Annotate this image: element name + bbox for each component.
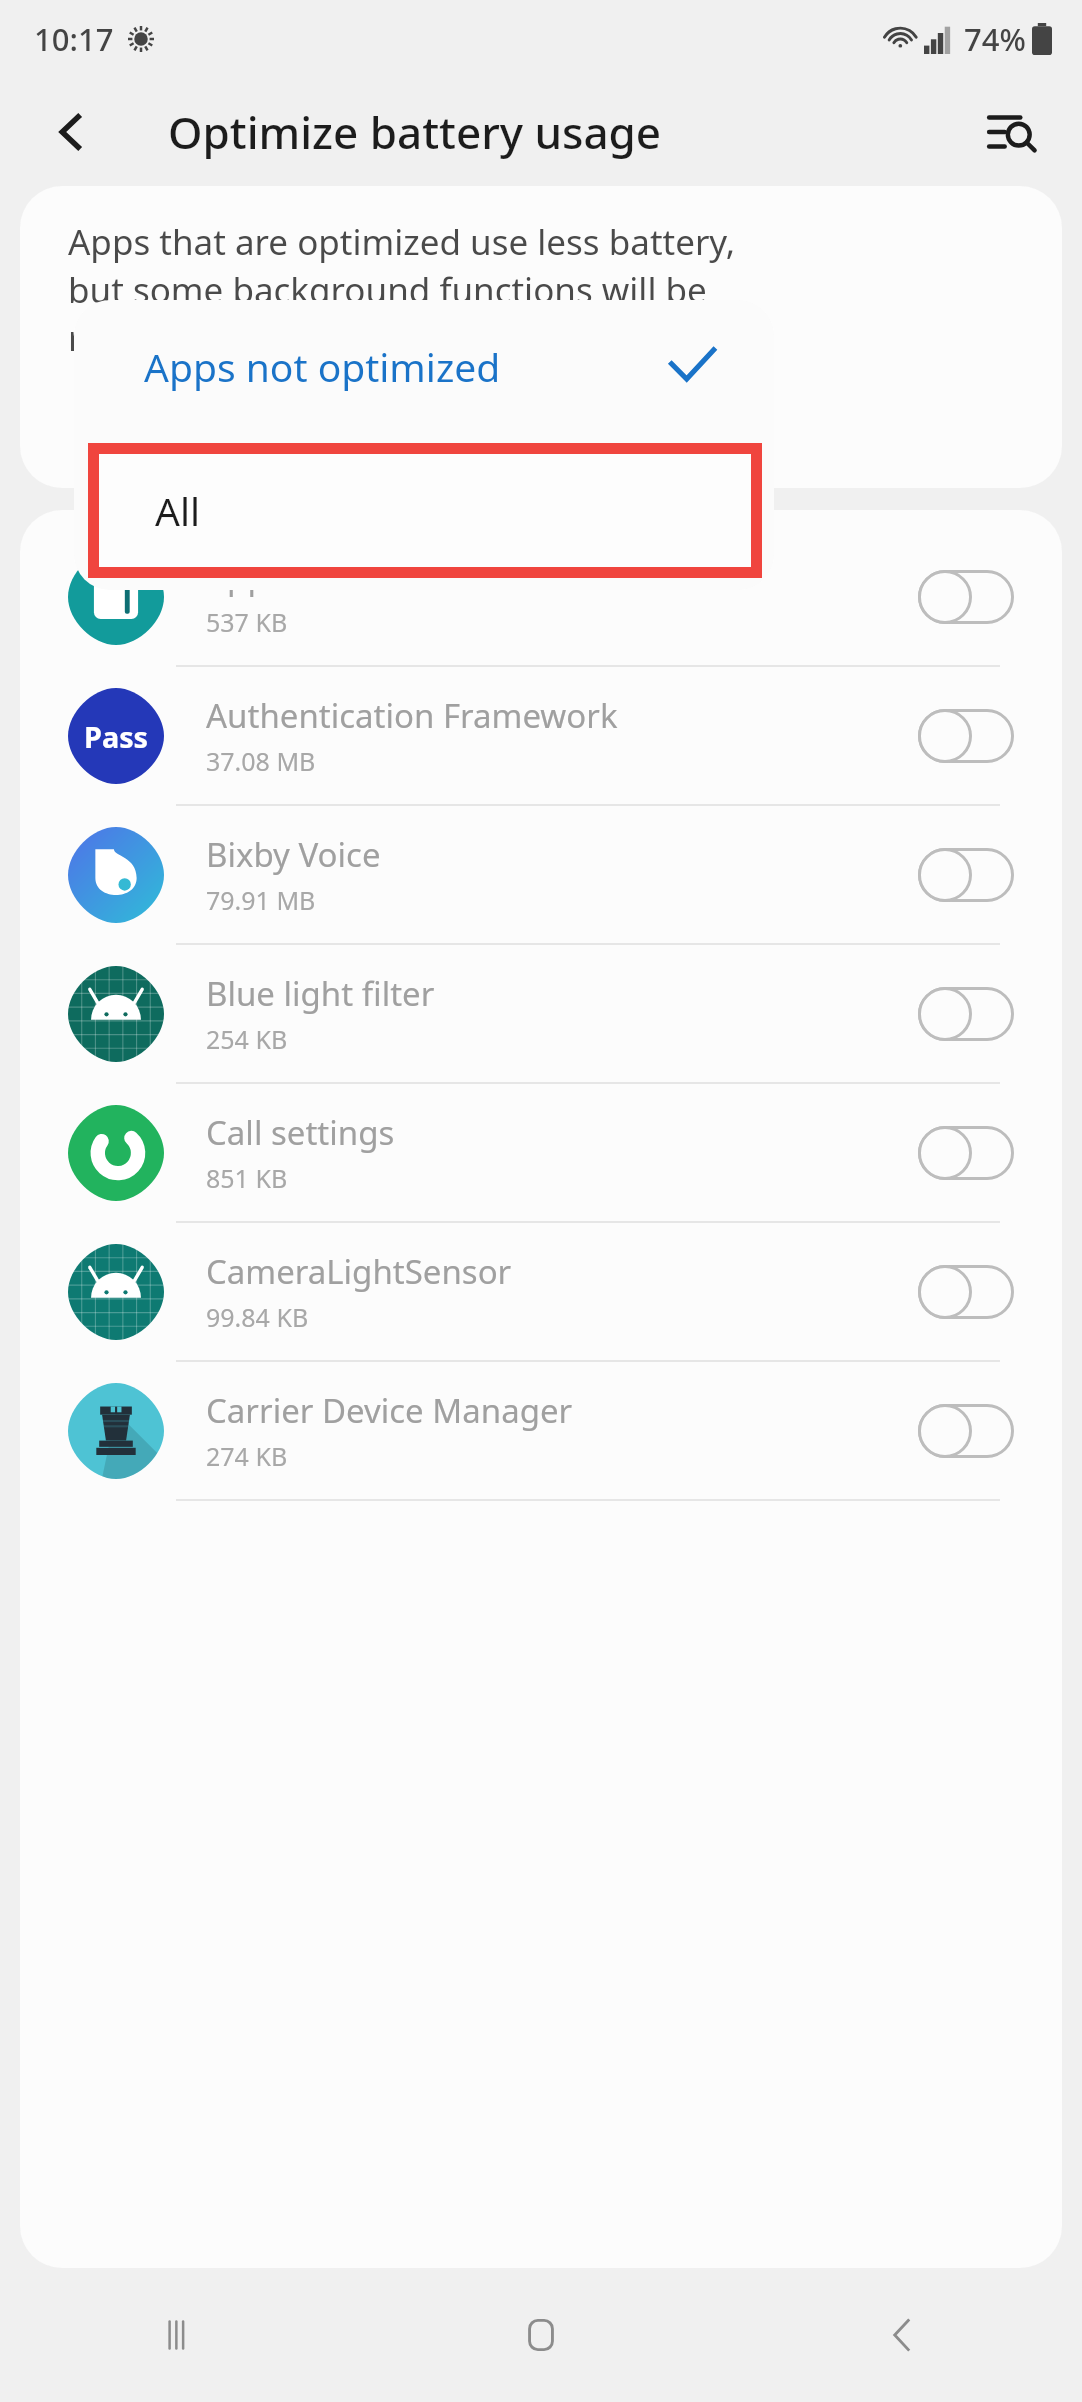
staticText: restricted. — [68, 314, 235, 362]
button[interactable]: Back — [721, 2268, 1082, 2402]
staticText: 537 KB — [206, 605, 288, 639]
staticText: Bixby Voice — [206, 832, 381, 877]
button[interactable]: Blue light filter — [20, 945, 1062, 1084]
staticText: Apps not optimized — [144, 340, 664, 393]
staticText: Apps — [206, 554, 284, 599]
button[interactable]: Back — [34, 95, 108, 169]
staticText: Carrier Device Manager — [206, 1388, 573, 1433]
staticText: Authentication Framework — [206, 693, 618, 738]
button[interactable]: Pass — [20, 667, 1062, 806]
button[interactable]: Home — [360, 2268, 721, 2402]
staticText: 10:17 — [34, 18, 114, 60]
staticText: Optimize battery usage — [168, 102, 662, 162]
staticText: Pass — [84, 717, 149, 756]
staticText: 99.84 KB — [206, 1300, 309, 1334]
button[interactable]: Bixby Voice — [20, 806, 1062, 945]
button[interactable]: Search — [972, 92, 1052, 172]
staticText: 74% — [964, 18, 1026, 60]
button[interactable]: Carrier Device Manager — [20, 1362, 1062, 1501]
staticText: 851 KB — [206, 1161, 288, 1195]
staticText: 254 KB — [206, 1022, 288, 1056]
button[interactable]: Apps not optimized — [74, 300, 774, 432]
staticText: Call settings — [206, 1110, 395, 1155]
staticText: Apps that are optimized use less battery… — [68, 218, 736, 266]
staticText: All — [144, 485, 190, 538]
button[interactable]: All — [74, 432, 774, 590]
button[interactable]: Call settings — [20, 1084, 1062, 1223]
staticText: All — [155, 484, 201, 537]
button[interactable]: CameraLightSensor — [20, 1223, 1062, 1362]
staticText: 274 KB — [206, 1439, 288, 1473]
staticText: 37.08 MB — [206, 744, 316, 778]
staticText: Blue light filter — [206, 971, 435, 1016]
button[interactable]: Recents — [0, 2268, 360, 2402]
button[interactable]: Apps — [20, 528, 1062, 667]
staticText: 79.91 MB — [206, 883, 316, 917]
staticText: but some background functions will be — [68, 266, 707, 314]
staticText: CameraLightSensor — [206, 1249, 512, 1294]
